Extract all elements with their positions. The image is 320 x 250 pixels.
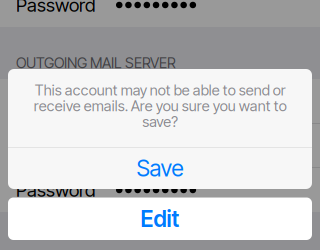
staticText: Host Name xyxy=(16,90,106,112)
staticText: smtp.mail.me.com xyxy=(159,90,304,112)
button[interactable]: Edit xyxy=(8,197,312,240)
staticText: j.appleseed@me.com xyxy=(132,134,304,157)
staticText: Save xyxy=(136,154,183,182)
button[interactable]: Save xyxy=(8,147,312,189)
staticText: OUTGOING MAIL SERVER xyxy=(16,54,176,72)
staticText: Edit xyxy=(140,205,179,232)
staticText: User Name xyxy=(16,134,106,157)
staticText: This account may not be able to send or … xyxy=(33,81,286,131)
staticText: Password xyxy=(16,179,95,201)
staticText: Password xyxy=(16,0,95,16)
